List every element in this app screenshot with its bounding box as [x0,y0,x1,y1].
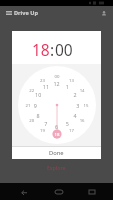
button[interactable]: Home [51,184,67,200]
button[interactable]: Done [12,147,101,159]
button[interactable]: Back [16,184,32,200]
button[interactable]: 00 [55,39,73,60]
button[interactable]: Explore [12,162,101,174]
staticText: Done [49,149,64,157]
staticText: Drive Up [14,9,39,17]
button[interactable]: Navigation menu [3,7,15,19]
button[interactable]: 18 [32,39,50,60]
staticText: Explore [47,165,66,172]
staticText: : [50,39,55,60]
staticText: 00 [55,39,73,60]
button[interactable]: Account [98,7,110,19]
staticText: 18 [32,39,50,60]
button[interactable]: Recent apps [84,184,100,200]
